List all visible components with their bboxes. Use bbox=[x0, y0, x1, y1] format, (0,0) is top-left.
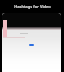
staticText: Hashtags for Video bbox=[14, 4, 51, 9]
